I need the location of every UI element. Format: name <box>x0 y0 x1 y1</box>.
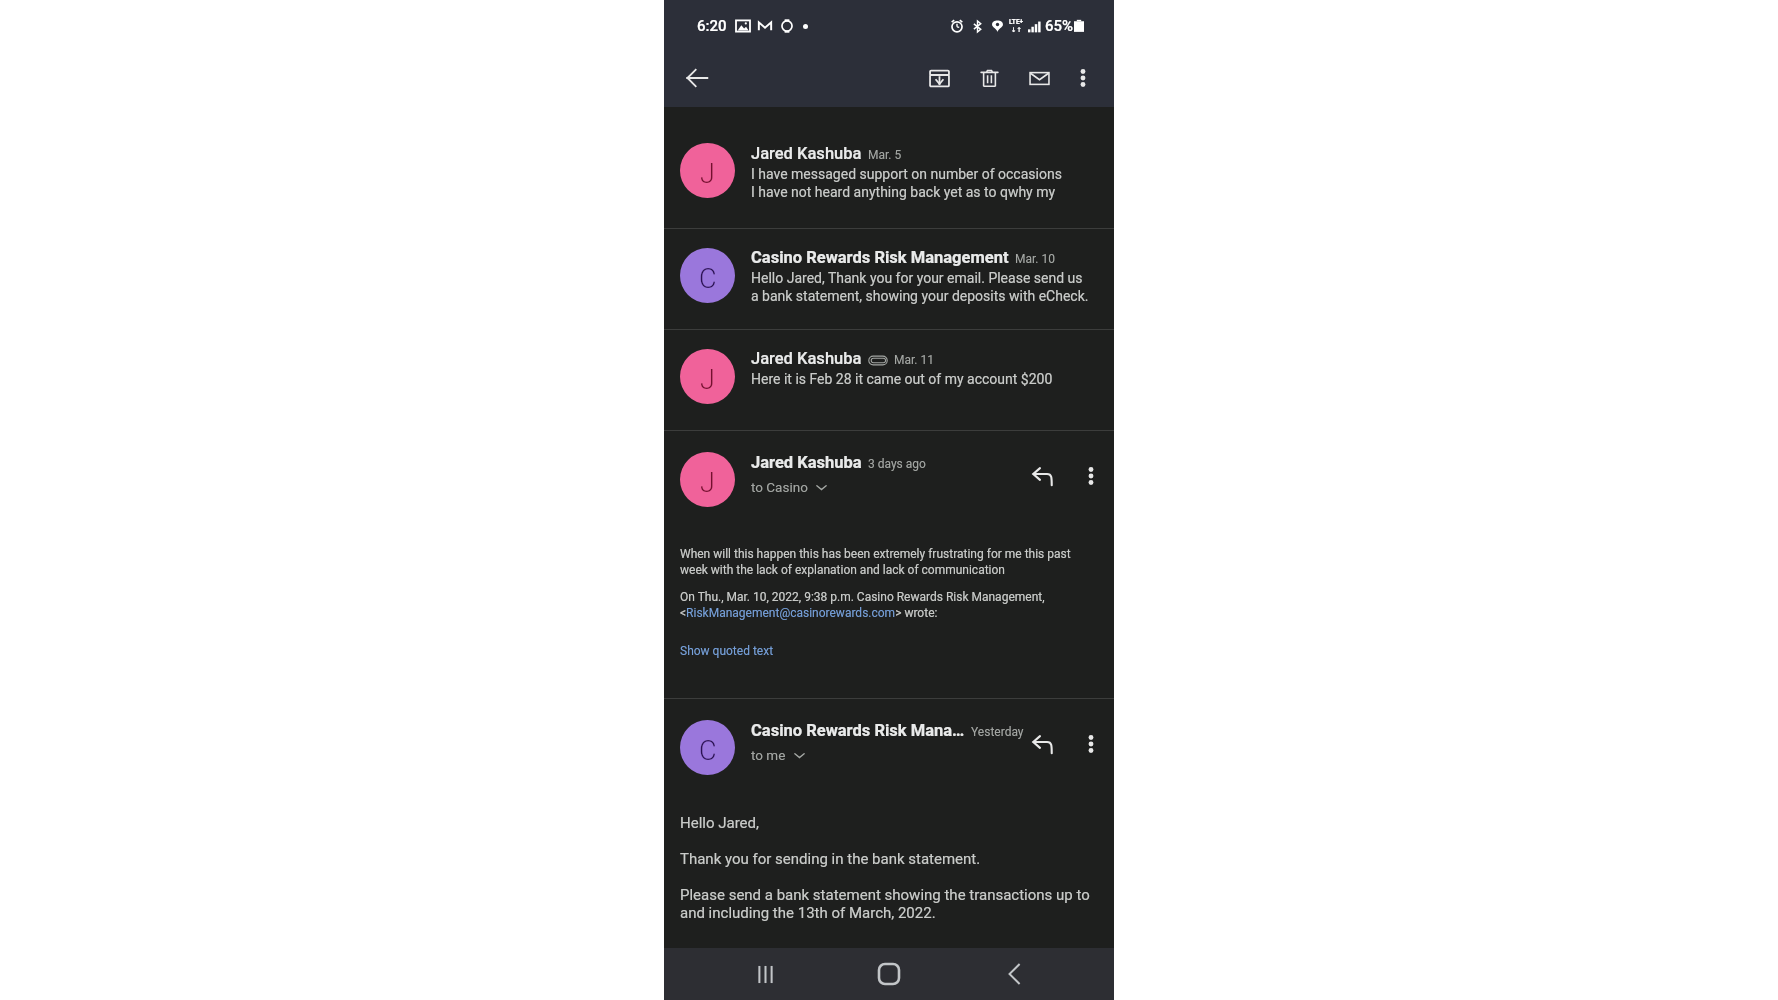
staticText: Jared Kashuba <box>751 453 862 472</box>
button[interactable]: Back <box>676 57 718 99</box>
staticText: Mar. 11 <box>894 353 934 367</box>
staticText: Hello Jared, <box>680 814 759 832</box>
button[interactable]: Recent apps <box>741 950 789 998</box>
staticText: 3 days ago <box>868 457 926 471</box>
button[interactable]: Contact photo <box>680 143 735 198</box>
button[interactable]: Contact photo <box>664 229 1114 329</box>
button[interactable]: Reply <box>1023 725 1061 763</box>
staticText: Casino Rewards Risk Mana… <box>751 721 965 740</box>
button[interactable]: Home <box>865 950 913 998</box>
staticText: Jared Kashuba <box>751 349 862 368</box>
staticText: Hello Jared, Thank you for your email. P… <box>751 270 1089 304</box>
button[interactable]: Contact photo <box>664 330 1114 430</box>
button[interactable]: Archive <box>920 59 958 97</box>
button[interactable]: Back <box>990 950 1038 998</box>
button[interactable]: Show quoted text <box>680 644 774 658</box>
staticText: Casino Rewards Risk Management <box>751 248 1009 267</box>
staticText: Yesterday <box>971 725 1024 739</box>
button[interactable]: Contact photo <box>680 349 735 404</box>
button[interactable]: Show details <box>751 479 827 495</box>
button[interactable]: Show details <box>751 747 805 763</box>
staticText: LTE+ <box>1009 18 1024 26</box>
button[interactable]: More options <box>1072 457 1110 495</box>
staticText: Please send a bank statement showing the… <box>680 886 1090 922</box>
button[interactable]: Mark as unread <box>1020 59 1058 97</box>
button[interactable]: Contact photo <box>680 248 735 303</box>
button[interactable]: More options <box>1064 59 1102 97</box>
staticText: J <box>700 364 715 396</box>
staticText: Here it is Feb 28 it came out of my acco… <box>751 371 1053 387</box>
button[interactable]: Contact photo <box>680 452 735 507</box>
staticText: J <box>700 158 715 190</box>
staticText: I have messaged support on number of occ… <box>751 166 1062 200</box>
staticText: J <box>700 467 715 499</box>
staticText: C <box>699 735 717 767</box>
staticText: Mar. 5 <box>868 148 902 162</box>
button[interactable]: More options <box>1072 725 1110 763</box>
staticText: 6:20 <box>697 17 727 35</box>
button[interactable]: Delete <box>970 59 1008 97</box>
staticText: C <box>699 263 717 295</box>
staticText: to me <box>751 747 786 763</box>
button[interactable]: Contact photo <box>664 107 1114 228</box>
button[interactable]: Contact photo <box>680 720 735 775</box>
staticText: When will this happen this has been extr… <box>680 547 1071 577</box>
button[interactable]: Reply <box>1023 457 1061 495</box>
staticText: On Thu., Mar. 10, 2022, 9:38 p.m. Casino… <box>680 590 1045 620</box>
staticText: ↓↑ <box>1011 26 1022 34</box>
staticText: to Casino <box>751 479 808 495</box>
staticText: Jared Kashuba <box>751 144 862 163</box>
staticText: Thank you for sending in the bank statem… <box>680 850 981 868</box>
staticText: Mar. 10 <box>1015 252 1055 266</box>
staticText: 65% <box>1045 17 1074 35</box>
